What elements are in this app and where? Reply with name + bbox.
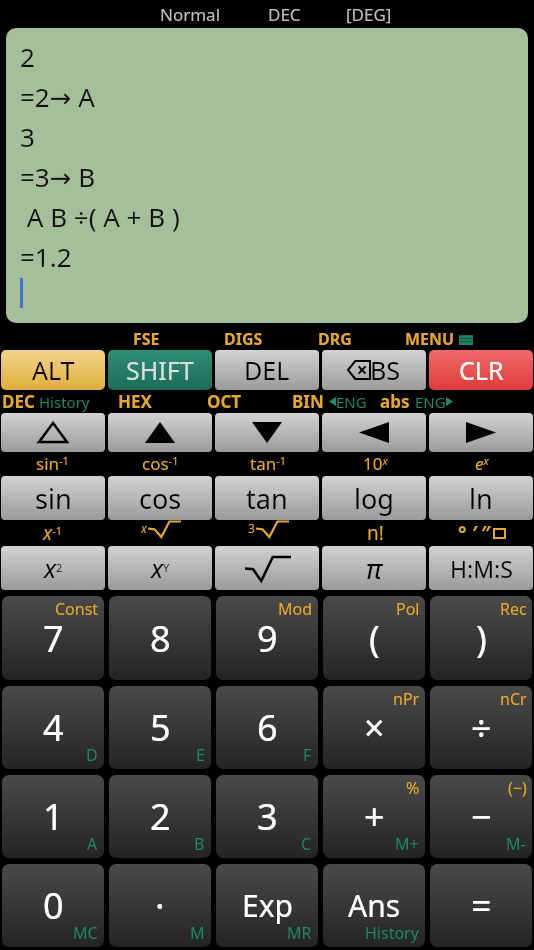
button[interactable]: 5: [109, 686, 211, 769]
staticText: History: [39, 392, 90, 412]
button[interactable]: 9: [216, 596, 318, 680]
staticText: 4: [43, 703, 64, 752]
button[interactable]: −: [430, 775, 532, 858]
staticText: Rec: [500, 598, 527, 620]
button[interactable]: CLR: [429, 350, 533, 390]
button[interactable]: 1: [2, 775, 104, 858]
button[interactable]: 2: [109, 775, 211, 858]
staticText: M+: [395, 833, 419, 855]
staticText: ENG: [415, 392, 446, 412]
staticText: 6: [257, 703, 278, 752]
staticText: Exp: [242, 885, 293, 926]
staticText: ′: [472, 520, 478, 546]
staticText: M: [190, 922, 205, 944]
staticText: 10x: [363, 452, 388, 475]
staticText: 2: [150, 792, 171, 841]
button[interactable]: 8: [109, 596, 211, 680]
staticText: °: [458, 520, 467, 546]
button[interactable]: 0: [2, 864, 104, 947]
staticText: +: [364, 792, 385, 841]
staticText: log: [354, 480, 394, 517]
staticText: 9: [257, 614, 278, 663]
button[interactable]: ÷: [430, 686, 532, 769]
staticText: sin: [35, 480, 72, 517]
button[interactable]: ALT: [1, 350, 105, 390]
button[interactable]: tan: [215, 476, 319, 520]
staticText: ″: [481, 520, 491, 546]
button[interactable]: ln: [429, 476, 533, 520]
staticText: CLR: [459, 353, 504, 387]
staticText: =: [471, 881, 492, 930]
staticText: 3: [257, 792, 278, 841]
button[interactable]: ·: [109, 864, 211, 947]
button[interactable]: Exp: [216, 864, 318, 947]
staticText: nPr: [393, 688, 420, 710]
staticText: HEX: [118, 390, 152, 413]
button[interactable]: [215, 546, 319, 590]
staticText: A B ÷( A + B ): [20, 199, 180, 234]
staticText: DEL: [244, 353, 290, 387]
staticText: 2: [20, 39, 35, 74]
staticText: −: [471, 792, 492, 841]
button[interactable]: sin: [1, 476, 105, 520]
staticText: ÷: [471, 703, 492, 752]
button[interactable]: SHIFT: [108, 350, 212, 390]
staticText: ): [476, 614, 487, 663]
staticText: π: [366, 550, 382, 587]
button[interactable]: 2: [6, 28, 528, 323]
button[interactable]: [1, 413, 105, 452]
staticText: x-1: [43, 520, 63, 546]
button[interactable]: ×: [323, 686, 425, 769]
staticText: OCT: [207, 390, 242, 413]
button[interactable]: x2: [1, 546, 105, 590]
button[interactable]: 4: [2, 686, 104, 769]
button[interactable]: log: [322, 476, 426, 520]
staticText: D: [86, 744, 98, 766]
staticText: 3: [20, 119, 35, 154]
button[interactable]: +: [323, 775, 425, 858]
staticText: tan: [246, 480, 288, 517]
staticText: M-: [506, 833, 526, 855]
staticText: xY: [151, 551, 170, 585]
staticText: F: [303, 744, 312, 766]
staticText: A: [87, 833, 98, 855]
button[interactable]: =: [430, 864, 532, 947]
button[interactable]: 3: [216, 775, 318, 858]
staticText: ln: [469, 480, 493, 517]
button[interactable]: xY: [108, 546, 212, 590]
staticText: (: [369, 614, 380, 663]
button[interactable]: DEL: [215, 350, 319, 390]
staticText: n!: [367, 520, 384, 546]
button[interactable]: Ans: [323, 864, 425, 947]
button[interactable]: ): [430, 596, 532, 680]
staticText: DIGS: [224, 328, 263, 350]
staticText: BIN: [292, 390, 324, 413]
staticText: H:M:S: [450, 553, 513, 584]
staticText: MC: [73, 922, 98, 944]
button[interactable]: [322, 413, 426, 452]
staticText: DEC: [268, 3, 301, 26]
staticText: Const: [55, 598, 99, 620]
staticText: 3: [248, 520, 255, 536]
button[interactable]: BS: [322, 350, 426, 390]
staticText: nCr: [500, 688, 527, 710]
staticText: History: [365, 922, 419, 944]
button[interactable]: 6: [216, 686, 318, 769]
button[interactable]: 7: [2, 596, 104, 680]
button[interactable]: [215, 413, 319, 452]
button[interactable]: H:M:S: [429, 546, 533, 590]
staticText: ·: [155, 881, 165, 930]
staticText: B: [194, 833, 205, 855]
staticText: %: [406, 777, 420, 799]
staticText: C: [301, 833, 312, 855]
button[interactable]: π: [322, 546, 426, 590]
staticText: Mod: [278, 598, 313, 620]
button[interactable]: [108, 413, 212, 452]
button[interactable]: cos: [108, 476, 212, 520]
staticText: abs: [380, 390, 410, 413]
button[interactable]: [429, 413, 533, 452]
staticText: 1: [43, 792, 64, 841]
staticText: ALT: [32, 353, 75, 387]
staticText: tan-1: [250, 452, 287, 475]
button[interactable]: (: [323, 596, 425, 680]
